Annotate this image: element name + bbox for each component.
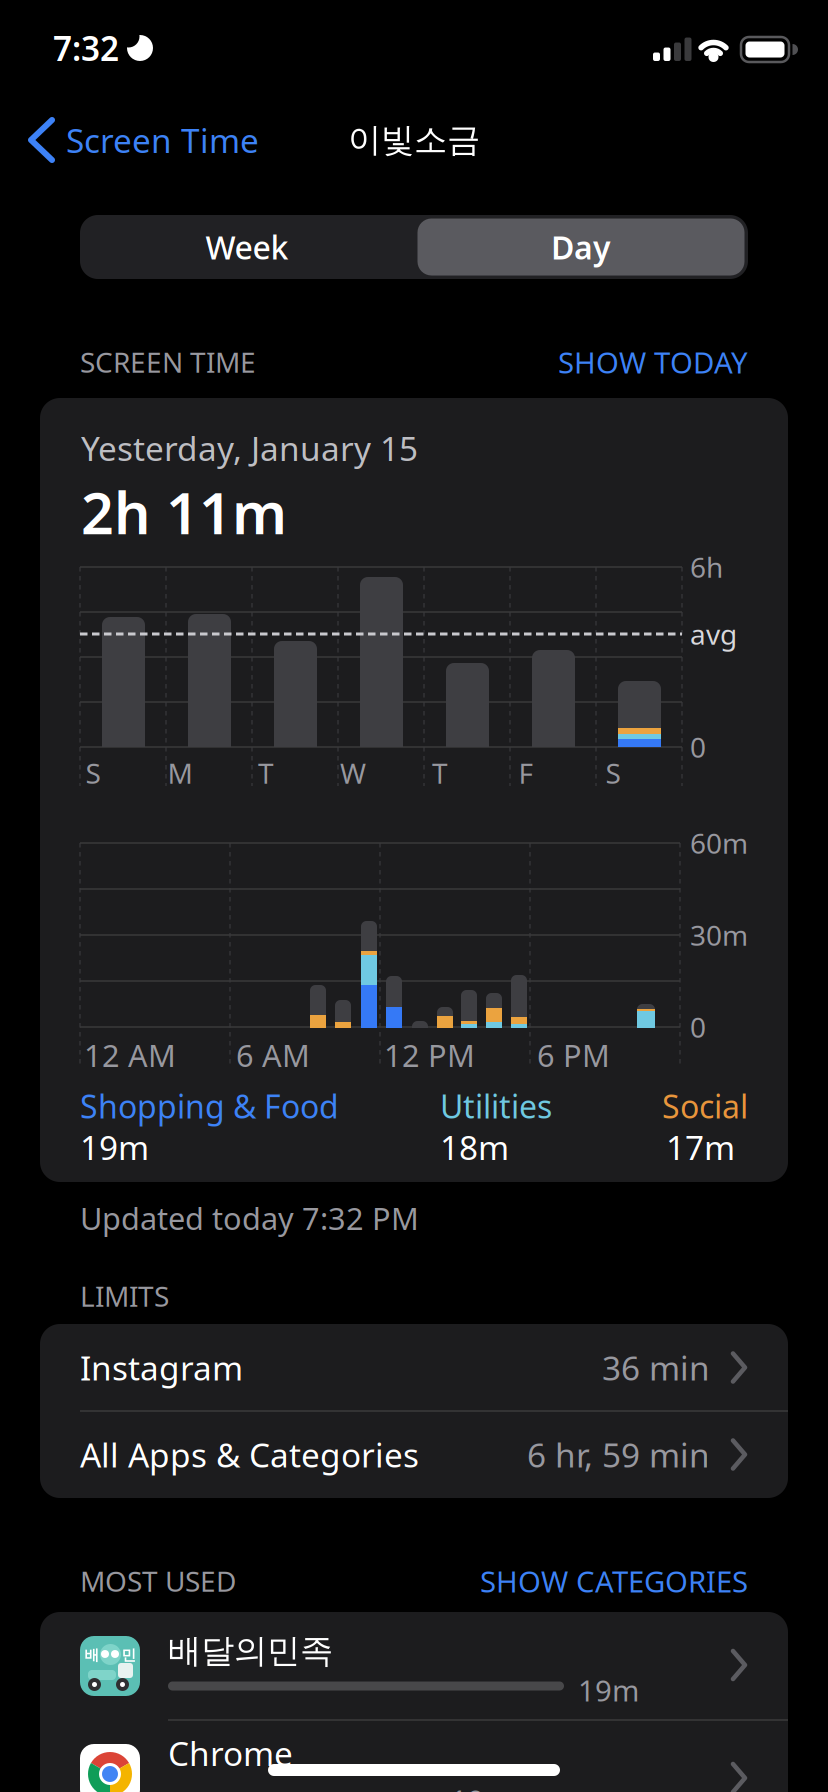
- staticText: MOST USED: [80, 1562, 236, 1600]
- staticText: Chrome: [168, 1731, 293, 1775]
- staticText: 배달의민족: [168, 1630, 333, 1671]
- staticText: 6 PM: [537, 1035, 610, 1075]
- staticText: T: [258, 754, 274, 792]
- button[interactable]: 배: [40, 1612, 788, 1719]
- staticText: Utilities: [440, 1085, 552, 1127]
- staticText: 36 min: [602, 1345, 710, 1390]
- staticText: 19m: [578, 1670, 639, 1709]
- button[interactable]: All Apps & Categories: [40, 1411, 788, 1498]
- staticText: 0: [690, 728, 706, 766]
- button[interactable]: Day: [414, 215, 748, 279]
- staticText: S: [605, 754, 620, 792]
- staticText: Day: [551, 226, 611, 268]
- staticText: Instagram: [80, 1345, 243, 1390]
- staticText: SHOW CATEGORIES: [480, 1561, 748, 1600]
- staticText: 7:32: [53, 26, 119, 70]
- staticText: avg: [690, 615, 737, 653]
- staticText: 배: [84, 1646, 99, 1664]
- button[interactable]: Week: [82, 215, 412, 279]
- staticText: LIMITS: [80, 1277, 169, 1315]
- staticText: Shopping & Food: [80, 1085, 339, 1127]
- staticText: 17m: [666, 1125, 735, 1169]
- button[interactable]: SHOW CATEGORIES: [348, 1561, 748, 1600]
- staticText: 19m: [450, 1780, 511, 1792]
- staticText: W: [340, 754, 366, 792]
- staticText: 0: [690, 1008, 706, 1046]
- staticText: SCREEN TIME: [80, 343, 256, 381]
- staticText: 19m: [80, 1125, 149, 1169]
- staticText: M: [167, 754, 192, 792]
- staticText: F: [518, 754, 533, 792]
- staticText: 12 AM: [84, 1035, 176, 1075]
- staticText: 2h 11m: [81, 474, 287, 550]
- staticText: T: [432, 754, 448, 792]
- staticText: 민: [121, 1646, 136, 1664]
- staticText: 6 AM: [236, 1035, 310, 1075]
- staticText: SHOW TODAY: [558, 342, 748, 381]
- button[interactable]: Chrome: [40, 1721, 788, 1792]
- staticText: S: [85, 754, 100, 792]
- staticText: 60m: [690, 824, 748, 862]
- button[interactable]: SHOW TODAY: [348, 342, 748, 381]
- staticText: Social: [662, 1085, 748, 1127]
- staticText: Week: [205, 226, 288, 268]
- staticText: 6h: [690, 548, 723, 586]
- staticText: 이빛소금: [348, 119, 480, 160]
- staticText: Screen Time: [66, 118, 259, 162]
- button[interactable]: Back: [24, 105, 402, 175]
- staticText: Yesterday, January 15: [81, 426, 418, 470]
- staticText: Updated today 7:32 PM: [80, 1198, 419, 1238]
- staticText: 12 PM: [384, 1035, 475, 1075]
- staticText: All Apps & Categories: [80, 1432, 419, 1477]
- button[interactable]: Instagram: [40, 1324, 788, 1411]
- staticText: 6 hr, 59 min: [527, 1432, 710, 1477]
- staticText: 18m: [440, 1125, 509, 1169]
- staticText: 30m: [690, 916, 748, 954]
